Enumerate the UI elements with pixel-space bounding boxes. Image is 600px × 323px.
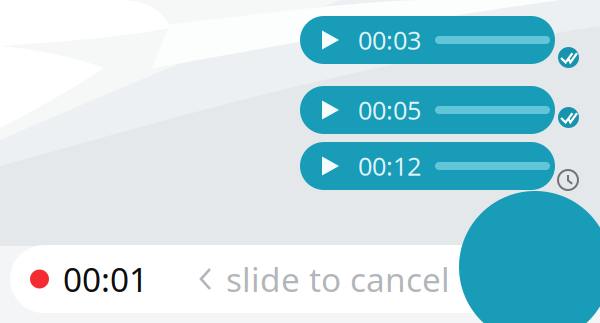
button[interactable]: Record voice message xyxy=(459,191,600,323)
staticText: 00:12 xyxy=(358,149,421,183)
button[interactable]: 00:12 xyxy=(300,142,555,190)
button[interactable]: 00:01 xyxy=(10,245,600,313)
staticText: 00:03 xyxy=(358,23,421,57)
staticText: 00:05 xyxy=(358,93,421,127)
staticText: 00:01 xyxy=(63,257,148,301)
button[interactable]: 00:03 xyxy=(300,16,555,64)
button[interactable]: 00:05 xyxy=(300,86,555,134)
staticText: slide to cancel xyxy=(226,257,450,301)
